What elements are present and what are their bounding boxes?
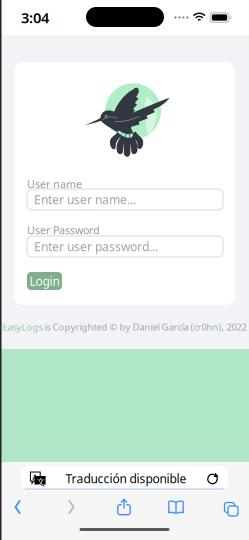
staticText: Enter user password... [34,238,158,254]
staticText: is Copyrighted © by Daniel García (cr0hn… [42,321,246,333]
button[interactable]: Share [102,493,146,521]
button[interactable]: A [21,466,228,491]
staticText: Enter user name... [34,191,136,207]
staticText: Traducción disponible [65,470,186,486]
staticText: 3:04 [21,8,49,27]
button[interactable]: Tabs [207,493,249,521]
staticText: A [32,472,37,483]
button[interactable]: Back [0,493,40,521]
staticText: User name [27,177,82,191]
button[interactable]: Forward [49,493,93,521]
staticText: 文 [37,477,45,487]
staticText: Login [29,273,59,289]
staticText: EasyLogs [2,321,42,333]
button[interactable]: Bookmarks [154,493,198,521]
staticText: User Password [27,223,100,237]
button[interactable]: Login [27,272,62,290]
